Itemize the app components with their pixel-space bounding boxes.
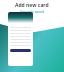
staticText: Securely saved (20, 9, 45, 14)
staticText: Add new card (15, 2, 49, 9)
button[interactable] (10, 49, 31, 52)
